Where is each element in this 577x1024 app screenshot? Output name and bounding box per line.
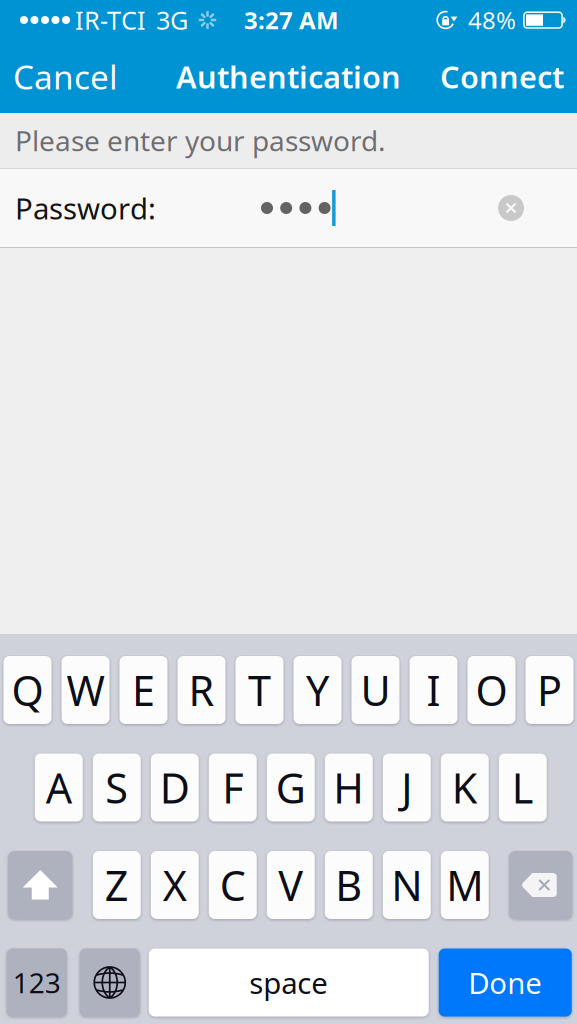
staticText: U <box>360 662 390 718</box>
button[interactable]: S <box>93 753 141 821</box>
button[interactable]: M <box>441 851 489 919</box>
staticText: 123 <box>13 963 61 1001</box>
button[interactable]: Connect <box>427 45 577 107</box>
button[interactable]: Clear text <box>489 186 533 230</box>
button[interactable]: A <box>35 753 83 821</box>
button[interactable]: W <box>61 656 109 724</box>
button[interactable]: X <box>151 851 199 919</box>
button[interactable]: K <box>441 753 489 821</box>
staticText: Password: <box>15 188 156 228</box>
staticText: T <box>248 662 271 718</box>
button[interactable]: N <box>383 851 431 919</box>
button[interactable]: Q <box>3 656 51 724</box>
staticText: N <box>391 857 422 913</box>
button[interactable]: Y <box>293 656 341 724</box>
staticText: Please enter your password. <box>15 121 386 159</box>
button[interactable]: Delete <box>509 851 572 919</box>
staticText: B <box>335 857 362 913</box>
staticText: Authentication <box>176 56 401 97</box>
staticText: H <box>333 759 364 816</box>
staticText: P <box>537 662 562 718</box>
staticText: 48% <box>468 4 516 36</box>
button[interactable]: R <box>177 656 225 724</box>
staticText: L <box>512 759 534 816</box>
staticText: M <box>446 857 483 913</box>
button[interactable]: F <box>209 753 257 821</box>
button[interactable]: L <box>499 753 547 821</box>
staticText: K <box>452 759 478 816</box>
button[interactable]: Z <box>93 851 141 919</box>
button[interactable]: Next keyboard <box>80 948 140 1016</box>
staticText: Y <box>306 662 329 718</box>
button[interactable]: T <box>235 656 283 724</box>
staticText: Cancel <box>13 54 118 99</box>
staticText: X <box>163 857 187 913</box>
button[interactable]: space <box>149 948 429 1016</box>
staticText: D <box>160 759 190 816</box>
staticText: 3:27 AM <box>244 4 339 36</box>
button[interactable]: H <box>325 753 373 821</box>
button[interactable]: 123 <box>7 948 67 1016</box>
staticText: IR-TCI <box>75 3 146 37</box>
staticText: E <box>132 662 155 718</box>
button[interactable]: P <box>525 656 573 724</box>
button[interactable]: C <box>209 851 257 919</box>
staticText: Q <box>11 662 43 718</box>
button[interactable]: U <box>351 656 399 724</box>
button[interactable]: I <box>409 656 457 724</box>
button[interactable]: Shift <box>8 851 72 919</box>
button[interactable]: D <box>151 753 199 821</box>
button[interactable]: Cancel <box>0 45 131 107</box>
staticText: Done <box>468 962 542 1002</box>
staticText: Z <box>105 857 129 913</box>
staticText: C <box>220 857 246 913</box>
button[interactable]: Done <box>439 948 572 1016</box>
staticText: I <box>426 662 440 718</box>
button[interactable]: E <box>119 656 167 724</box>
button[interactable]: J <box>383 753 431 821</box>
staticText: O <box>475 662 507 718</box>
staticText: W <box>66 662 104 718</box>
staticText: A <box>46 759 72 816</box>
button[interactable]: B <box>325 851 373 919</box>
staticText: R <box>188 662 214 718</box>
staticText: S <box>105 759 128 816</box>
staticText: space <box>249 962 328 1002</box>
button[interactable]: O <box>467 656 515 724</box>
button[interactable]: G <box>267 753 315 821</box>
button[interactable]: V <box>267 851 315 919</box>
staticText: 3G <box>156 3 188 37</box>
staticText: F <box>222 759 243 816</box>
staticText: G <box>276 759 306 816</box>
staticText: V <box>278 857 303 913</box>
staticText: Connect <box>440 56 564 97</box>
staticText: J <box>401 759 412 816</box>
